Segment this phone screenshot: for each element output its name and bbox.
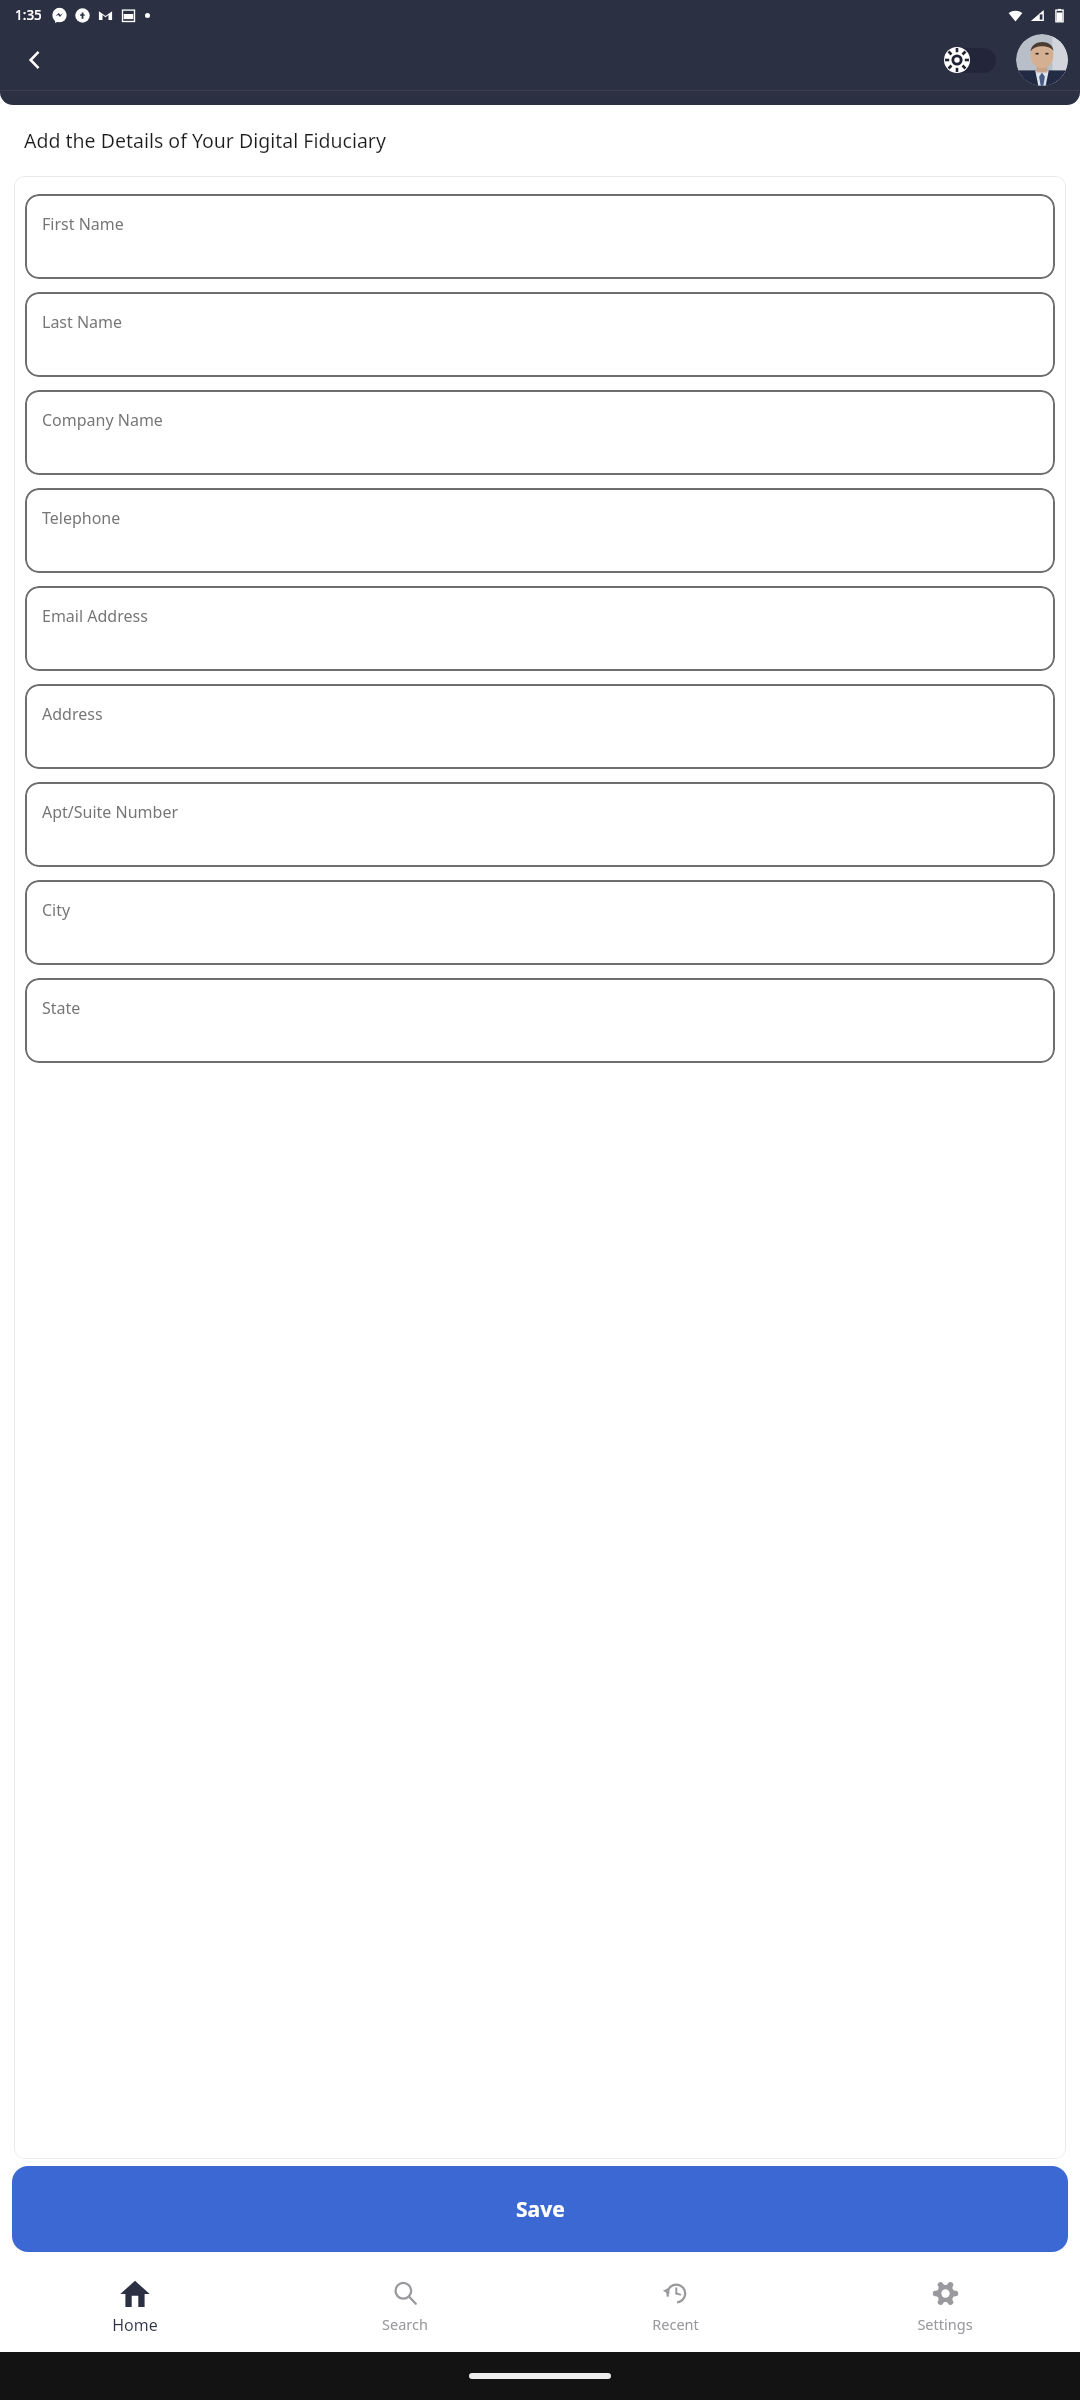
button[interactable]: Address [25,684,1055,769]
button[interactable]: First Name [25,194,1055,279]
button[interactable]: City [25,880,1055,965]
staticText: Telephone [42,507,121,529]
button[interactable]: Toggle theme [944,47,996,73]
button[interactable]: Company Name [25,390,1055,475]
button[interactable]: State [25,978,1055,1063]
button[interactable]: Telephone [25,488,1055,573]
button[interactable]: Back [12,37,58,83]
staticText: Add the Details of Your Digital Fiduciar… [24,127,386,154]
button[interactable]: Email Address [25,586,1055,671]
staticText: Home [112,2314,158,2336]
button[interactable]: Recent [540,2262,810,2352]
staticText: Last Name [42,311,123,333]
staticText: Company Name [42,409,163,431]
staticText: State [42,997,81,1019]
button[interactable]: Settings [810,2262,1080,2352]
staticText: 1:35 [15,6,42,24]
staticText: Apt/Suite Number [42,801,179,823]
staticText: Address [42,703,103,725]
staticText: Search [382,2314,428,2334]
staticText: Settings [917,2314,973,2334]
button[interactable]: Profile [1016,34,1068,86]
button[interactable]: Apt/Suite Number [25,782,1055,867]
staticText: First Name [42,213,124,235]
staticText: Email Address [42,605,148,627]
staticText: Save [516,2195,565,2224]
button[interactable]: Home [0,2262,270,2352]
staticText: Recent [652,2314,699,2334]
button[interactable]: Last Name [25,292,1055,377]
button[interactable]: Save [12,2166,1068,2252]
button[interactable]: Search [270,2262,540,2352]
staticText: City [42,899,71,921]
